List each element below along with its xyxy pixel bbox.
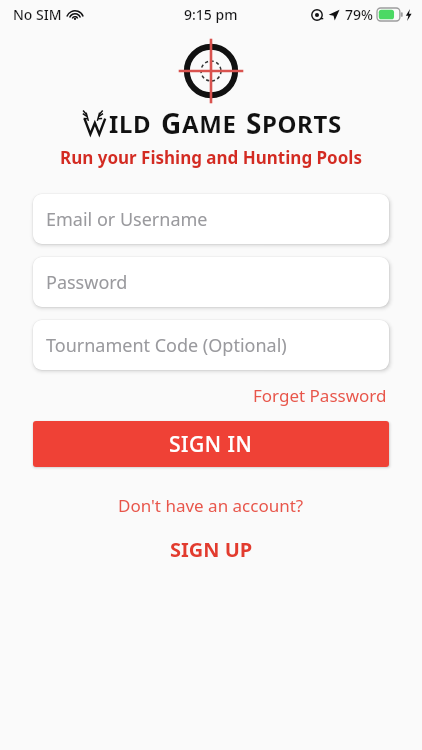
staticText: S [246, 104, 262, 142]
staticText: Run your Fishing and Hunting Pools [60, 146, 362, 169]
staticText: AME [182, 107, 237, 140]
staticText: G [161, 104, 182, 142]
staticText: Password [46, 270, 128, 295]
button[interactable]: Email or Username [33, 194, 389, 244]
staticText: 9:15 pm [184, 5, 238, 24]
staticText: SIGN UP [170, 536, 253, 563]
staticText: Don't have an account? [118, 494, 304, 517]
button[interactable]: SIGN UP [162, 533, 261, 566]
staticText: Tournament Code (Optional) [46, 333, 287, 358]
button[interactable]: Don't have an account? [114, 492, 308, 519]
staticText: Forget Password [253, 384, 387, 407]
button[interactable]: SIGN IN [33, 421, 389, 467]
staticText: No SIM [13, 5, 62, 24]
staticText: SIGN IN [169, 430, 253, 459]
button[interactable]: Forget Password [251, 382, 389, 409]
staticText: ILD [109, 107, 152, 140]
staticText: 79% [345, 5, 373, 24]
staticText: PORTS [262, 107, 342, 140]
button[interactable]: Password [33, 257, 389, 307]
staticText: Email or Username [46, 207, 208, 232]
button[interactable]: Tournament Code (Optional) [33, 320, 389, 370]
